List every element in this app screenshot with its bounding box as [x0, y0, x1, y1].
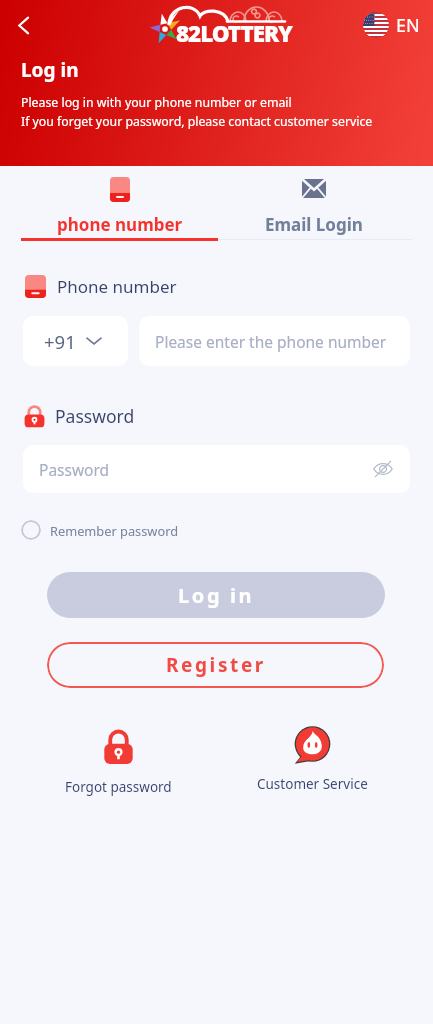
staticText: Register [166, 652, 266, 678]
button[interactable]: Email Login [217, 172, 411, 236]
staticText: Remember password [50, 522, 179, 539]
staticText: Log in [21, 57, 79, 83]
staticText: EN [396, 13, 420, 38]
button[interactable]: Please enter the phone number [139, 316, 410, 366]
button[interactable]: Remember password [19, 518, 181, 542]
button[interactable]: Log in [47, 572, 385, 618]
staticText: 82LOTTERY [176, 18, 292, 49]
button[interactable]: phone number [21, 172, 218, 236]
staticText: Password [39, 459, 110, 480]
staticText: Password [55, 404, 135, 428]
button[interactable]: Back [5, 7, 41, 43]
staticText: Phone number [57, 275, 177, 298]
staticText: Forgot password [65, 778, 172, 796]
button[interactable]: Customer Service [255, 727, 370, 793]
staticText: Please enter the phone number [155, 331, 387, 352]
button[interactable]: +91 [23, 316, 128, 366]
staticText: phone number [57, 213, 183, 236]
staticText: Email Login [265, 213, 363, 236]
staticText: If you forget your password, please cont… [21, 113, 373, 130]
staticText: Log in [178, 582, 255, 609]
button[interactable]: Forgot password [58, 729, 179, 796]
staticText: Please log in with your phone number or … [21, 94, 292, 111]
button[interactable]: Password [23, 445, 410, 493]
button[interactable]: Show password [370, 456, 396, 482]
staticText: Customer Service [257, 775, 368, 793]
button[interactable]: Register [47, 642, 384, 688]
button[interactable]: Language EN [363, 12, 420, 38]
staticText: +91 [44, 329, 76, 354]
